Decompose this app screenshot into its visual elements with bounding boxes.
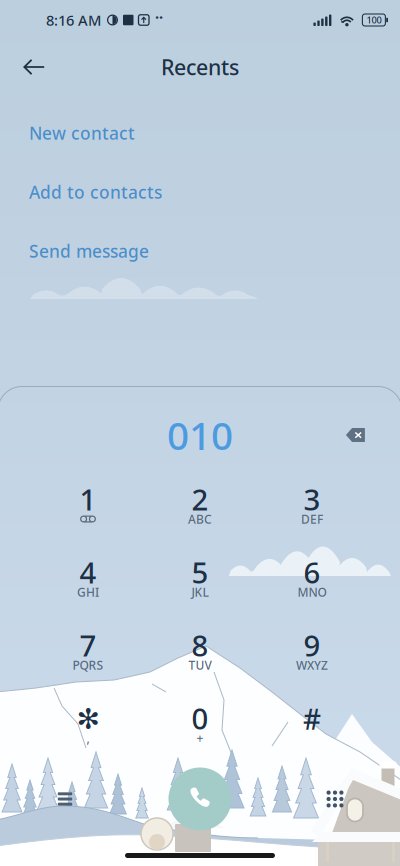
staticText: 9 — [303, 625, 320, 664]
staticText: + — [196, 730, 203, 746]
staticText: 6 — [303, 552, 320, 591]
staticText: GHI — [77, 584, 99, 600]
button[interactable]: Send message — [0, 231, 400, 271]
staticText: ·· — [155, 7, 163, 27]
button[interactable]: Add to contacts — [0, 172, 400, 212]
staticText: WXYZ — [296, 657, 328, 673]
button[interactable]: 4 — [32, 544, 144, 617]
button[interactable]: Keypad — [307, 771, 363, 827]
button[interactable]: 5 — [144, 544, 256, 617]
button[interactable]: 1 — [32, 471, 144, 544]
button[interactable]: 0 — [144, 690, 256, 763]
staticText: # — [303, 700, 321, 738]
staticText: Add to contacts — [29, 180, 162, 203]
staticText: MNO — [297, 584, 326, 600]
button[interactable]: # — [256, 690, 368, 763]
button[interactable]: Delete — [330, 413, 382, 457]
button[interactable]: 7 — [32, 617, 144, 690]
staticText: TUV — [188, 657, 211, 673]
button[interactable]: Call — [164, 763, 236, 835]
staticText: , — [86, 730, 89, 746]
button[interactable]: More options — [37, 771, 93, 827]
staticText: 7 — [79, 625, 96, 664]
staticText: Send message — [29, 239, 149, 262]
button[interactable]: 2 — [144, 471, 256, 544]
staticText: ABC — [188, 511, 212, 527]
staticText: 1 — [79, 479, 96, 518]
staticText: DEF — [301, 511, 323, 527]
button[interactable]: 9 — [256, 617, 368, 690]
staticText: JKL — [191, 584, 208, 600]
staticText: 8:16 AM — [46, 10, 101, 30]
button[interactable]: 6 — [256, 544, 368, 617]
staticText: PQRS — [72, 657, 103, 673]
button[interactable]: New contact — [0, 113, 400, 153]
staticText: 010 — [167, 409, 233, 461]
button[interactable]: ✻ — [32, 690, 144, 763]
staticText: 5 — [191, 552, 208, 591]
staticText: 8 — [191, 625, 208, 664]
button[interactable]: Back — [14, 47, 54, 87]
staticText: 4 — [79, 552, 96, 591]
staticText: Recents — [161, 53, 239, 81]
staticText: ✻ — [76, 703, 99, 735]
staticText: 0 — [191, 698, 208, 737]
staticText: New contact — [29, 121, 135, 144]
button[interactable]: 8 — [144, 617, 256, 690]
staticText: 100 — [366, 14, 381, 26]
staticText: 2 — [191, 479, 208, 518]
button[interactable]: 3 — [256, 471, 368, 544]
staticText: 3 — [303, 479, 320, 518]
